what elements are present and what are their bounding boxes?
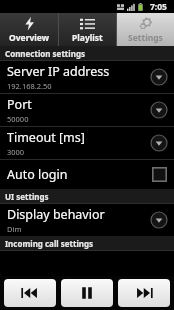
button[interactable]: Timeout [ms] — [0, 127, 174, 159]
button[interactable]: Next — [118, 279, 170, 307]
button[interactable]: Settings — [117, 13, 174, 46]
staticText: 3000 — [7, 147, 25, 157]
staticText: Overview — [9, 32, 50, 44]
staticText: Port — [7, 96, 32, 113]
staticText: Settings — [128, 32, 163, 44]
staticText: Auto login — [7, 166, 68, 183]
button[interactable]: Expand — [150, 134, 168, 152]
staticText: Incoming call settings — [5, 238, 94, 249]
button[interactable]: Expand — [150, 211, 168, 229]
button[interactable]: Overview — [0, 13, 58, 46]
button[interactable]: Expand — [150, 68, 168, 86]
button[interactable]: Expand — [150, 101, 168, 119]
staticText: Display behavior — [7, 206, 105, 223]
staticText: 192.168.2.50 — [7, 81, 52, 91]
button[interactable]: Auto login — [0, 160, 174, 189]
staticText: Timeout [ms] — [7, 129, 85, 146]
staticText: Dim — [7, 224, 22, 234]
staticText: 50000 — [7, 114, 29, 124]
button[interactable]: Display behavior — [0, 204, 174, 236]
staticText: 7:05 — [150, 1, 167, 13]
button[interactable]: Port — [0, 94, 174, 126]
button[interactable]: Server IP address — [0, 61, 174, 93]
staticText: UI settings — [5, 191, 49, 202]
staticText: Connection settings — [5, 48, 85, 59]
button[interactable]: Previous — [4, 279, 56, 307]
button[interactable]: Pause — [61, 279, 113, 307]
button[interactable]: Auto login checkbox — [152, 167, 167, 182]
button[interactable]: Playlist — [59, 13, 116, 46]
staticText: Playlist — [72, 32, 103, 44]
staticText: Server IP address — [7, 63, 110, 80]
